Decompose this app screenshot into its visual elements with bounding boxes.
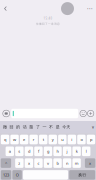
button[interactable]: Expand candidates [91, 125, 94, 129]
button[interactable]: Back [0, 3, 11, 15]
staticText: 话 [23, 124, 27, 129]
staticText: 是 [56, 124, 60, 129]
button[interactable]: More [84, 3, 96, 15]
button[interactable]: s [15, 146, 24, 156]
staticText: u [61, 137, 63, 142]
button[interactable]: r [29, 135, 38, 144]
button[interactable]: v [44, 158, 52, 168]
staticText: p [90, 137, 92, 142]
button[interactable]: e [20, 135, 28, 144]
staticText: 换行 [78, 172, 86, 177]
button[interactable]: 了 [35, 124, 41, 129]
staticText: o [80, 137, 82, 142]
staticText: 123 [3, 172, 9, 177]
button[interactable]: 回 [8, 124, 15, 129]
staticText: 撤 [3, 124, 7, 129]
button[interactable]: 的 [15, 124, 21, 129]
button[interactable]: c [34, 158, 43, 168]
staticText: x [89, 160, 91, 166]
staticText: ∨ [91, 125, 94, 129]
button[interactable]: u [58, 135, 66, 144]
staticText: 15:40 [43, 17, 52, 20]
button[interactable]: w [10, 135, 19, 144]
staticText: 的 [16, 124, 20, 129]
staticText: l [86, 149, 87, 154]
staticText: 一 [42, 124, 46, 129]
button[interactable]: g [44, 146, 52, 156]
button[interactable]: z [15, 158, 23, 168]
button[interactable]: x [25, 158, 33, 168]
staticText: h [57, 149, 59, 154]
button[interactable]: n [63, 158, 71, 168]
button[interactable]: O [12, 170, 22, 180]
staticText: v [47, 160, 49, 166]
button[interactable]: 一 [41, 124, 48, 129]
button[interactable]: a [6, 146, 14, 156]
button[interactable]: More options [87, 106, 94, 121]
staticText: n [66, 160, 68, 166]
button[interactable]: y [49, 135, 57, 144]
button[interactable]: k [72, 146, 81, 156]
button[interactable]: q [1, 135, 9, 144]
button[interactable]: 换行 [69, 170, 95, 180]
staticText: b [56, 160, 58, 166]
button[interactable]: p [87, 135, 95, 144]
button[interactable]: 撤 [2, 124, 8, 129]
staticText: ••• [87, 6, 93, 11]
staticText: z [18, 160, 20, 166]
button[interactable]: x [85, 158, 95, 168]
staticText: f [38, 149, 39, 154]
staticText: y [52, 137, 54, 142]
staticText: k [76, 149, 78, 154]
button[interactable] [23, 170, 68, 180]
button[interactable]: f [34, 146, 43, 156]
staticText: 不 [49, 124, 53, 129]
staticText: 了 [36, 124, 40, 129]
button[interactable]: o [77, 135, 86, 144]
staticText: 题 [29, 124, 33, 129]
button[interactable]: h [53, 146, 62, 156]
staticText: e [23, 137, 25, 142]
staticText: r [33, 137, 35, 142]
staticText: 今天 [62, 124, 70, 129]
button[interactable]: i [68, 135, 76, 144]
button[interactable]: l [82, 146, 90, 156]
staticText: d [28, 149, 30, 154]
button[interactable]: b [53, 158, 62, 168]
staticText: j [67, 149, 68, 154]
staticText: q [4, 137, 6, 142]
button[interactable]: 话 [21, 124, 28, 129]
staticText: c [37, 160, 39, 166]
button[interactable]: 题 [28, 124, 35, 129]
button[interactable]: 不 [48, 124, 54, 129]
staticText: t [43, 137, 44, 142]
staticText: s [18, 149, 20, 154]
staticText: O [16, 172, 19, 177]
button[interactable]: 123 [1, 170, 11, 180]
button[interactable]: ^ [1, 158, 11, 168]
button[interactable]: m [72, 158, 81, 168]
staticText: ^ [5, 160, 7, 166]
staticText: a [9, 149, 11, 154]
staticText: w [13, 137, 16, 142]
button[interactable]: d [25, 146, 33, 156]
staticText: m [75, 160, 79, 166]
staticText: i [71, 137, 72, 142]
staticText: x [28, 160, 30, 166]
staticText: 回 [9, 124, 13, 129]
staticText: 你撤回了一条消息 [36, 22, 60, 25]
staticText: g [47, 149, 49, 154]
button[interactable]: Emoji [79, 106, 87, 121]
button[interactable]: j [63, 146, 71, 156]
button[interactable]: 今天 [61, 124, 72, 129]
button[interactable]: Voice input [1, 106, 11, 121]
button[interactable]: 是 [54, 124, 61, 129]
button[interactable]: t [39, 135, 47, 144]
